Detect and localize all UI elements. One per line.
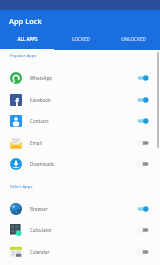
staticText: LOCKED — [72, 36, 90, 42]
other: Locked toggle off — [137, 139, 149, 147]
staticText: App Lock — [9, 16, 42, 26]
staticText: ALL APPS — [17, 36, 38, 42]
staticText: Browser — [30, 206, 48, 212]
button[interactable]: Email — [0, 132, 160, 154]
other: Locked toggle off — [137, 226, 149, 234]
staticText: Contacts — [30, 118, 49, 124]
staticText: WhatsApp — [30, 75, 53, 81]
staticText: f — [15, 95, 19, 106]
staticText: Calculator — [30, 227, 52, 233]
other: Locked toggle off — [137, 160, 149, 168]
other: Locked toggle on — [137, 205, 149, 213]
button[interactable]: Calendar — [0, 241, 160, 263]
button[interactable]: ALL APPS — [0, 33, 54, 50]
staticText: UNLOCKED — [121, 36, 146, 42]
button[interactable]: Browser — [0, 198, 160, 220]
staticText: Email — [30, 140, 42, 146]
staticText: Downloads — [30, 161, 55, 167]
other: Locked toggle on — [137, 74, 149, 82]
other: Locked toggle off — [137, 248, 149, 256]
staticText: Facebook — [30, 97, 51, 103]
button[interactable]: f — [0, 89, 160, 111]
other: Locked toggle on — [137, 96, 149, 104]
button[interactable]: UNLOCKED — [107, 33, 160, 50]
other: Locked toggle on — [137, 117, 149, 125]
staticText: Other Apps — [10, 184, 33, 190]
button[interactable]: Calculator — [0, 219, 160, 241]
staticText: Calendar — [30, 249, 50, 255]
staticText: Popular Apps — [10, 53, 37, 59]
button[interactable]: Downloads — [0, 153, 160, 175]
button[interactable]: WhatsApp — [0, 67, 160, 89]
button[interactable]: Contacts — [0, 110, 160, 132]
button[interactable]: LOCKED — [54, 33, 107, 50]
